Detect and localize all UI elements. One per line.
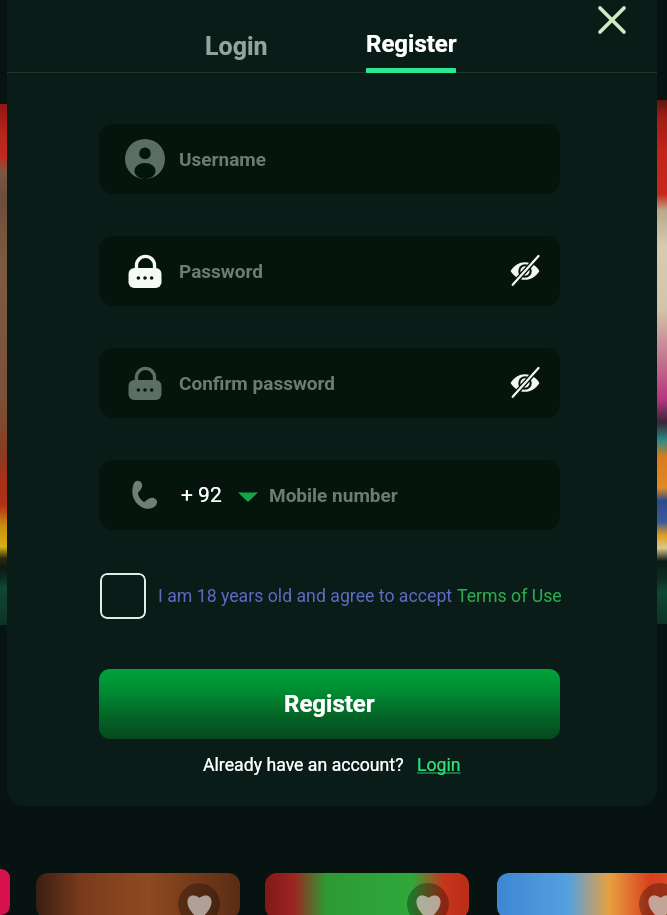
button[interactable]: Game xyxy=(36,873,240,915)
button[interactable]: Register xyxy=(336,0,486,72)
button[interactable]: Register xyxy=(99,669,560,739)
staticText: Already have an account? xyxy=(203,755,404,776)
button[interactable]: Close xyxy=(589,0,635,43)
button[interactable]: Login xyxy=(417,755,461,776)
button[interactable]: Terms of Use xyxy=(457,586,562,607)
button[interactable]: Username xyxy=(99,124,560,194)
staticText: + 92 xyxy=(181,483,222,508)
button[interactable]: Password xyxy=(99,236,560,306)
staticText: Mobile number xyxy=(269,484,398,506)
button[interactable]: Login xyxy=(166,0,306,72)
button[interactable]: Mobile number xyxy=(99,460,560,530)
staticText: Register xyxy=(366,30,457,58)
staticText: Login xyxy=(205,32,268,61)
staticText: Password xyxy=(179,260,263,282)
button[interactable]: Show password xyxy=(502,248,548,294)
staticText: Confirm password xyxy=(179,372,336,394)
button[interactable]: I am 18 years old xyxy=(100,573,146,619)
button[interactable]: Confirm password xyxy=(99,348,560,418)
button[interactable]: Game xyxy=(265,873,469,915)
staticText: I am 18 years old and agree to accept xyxy=(158,586,457,607)
button[interactable]: Show password xyxy=(502,360,548,406)
staticText: Register xyxy=(284,690,375,718)
button[interactable]: Game xyxy=(497,873,667,915)
staticText: Username xyxy=(179,148,267,170)
